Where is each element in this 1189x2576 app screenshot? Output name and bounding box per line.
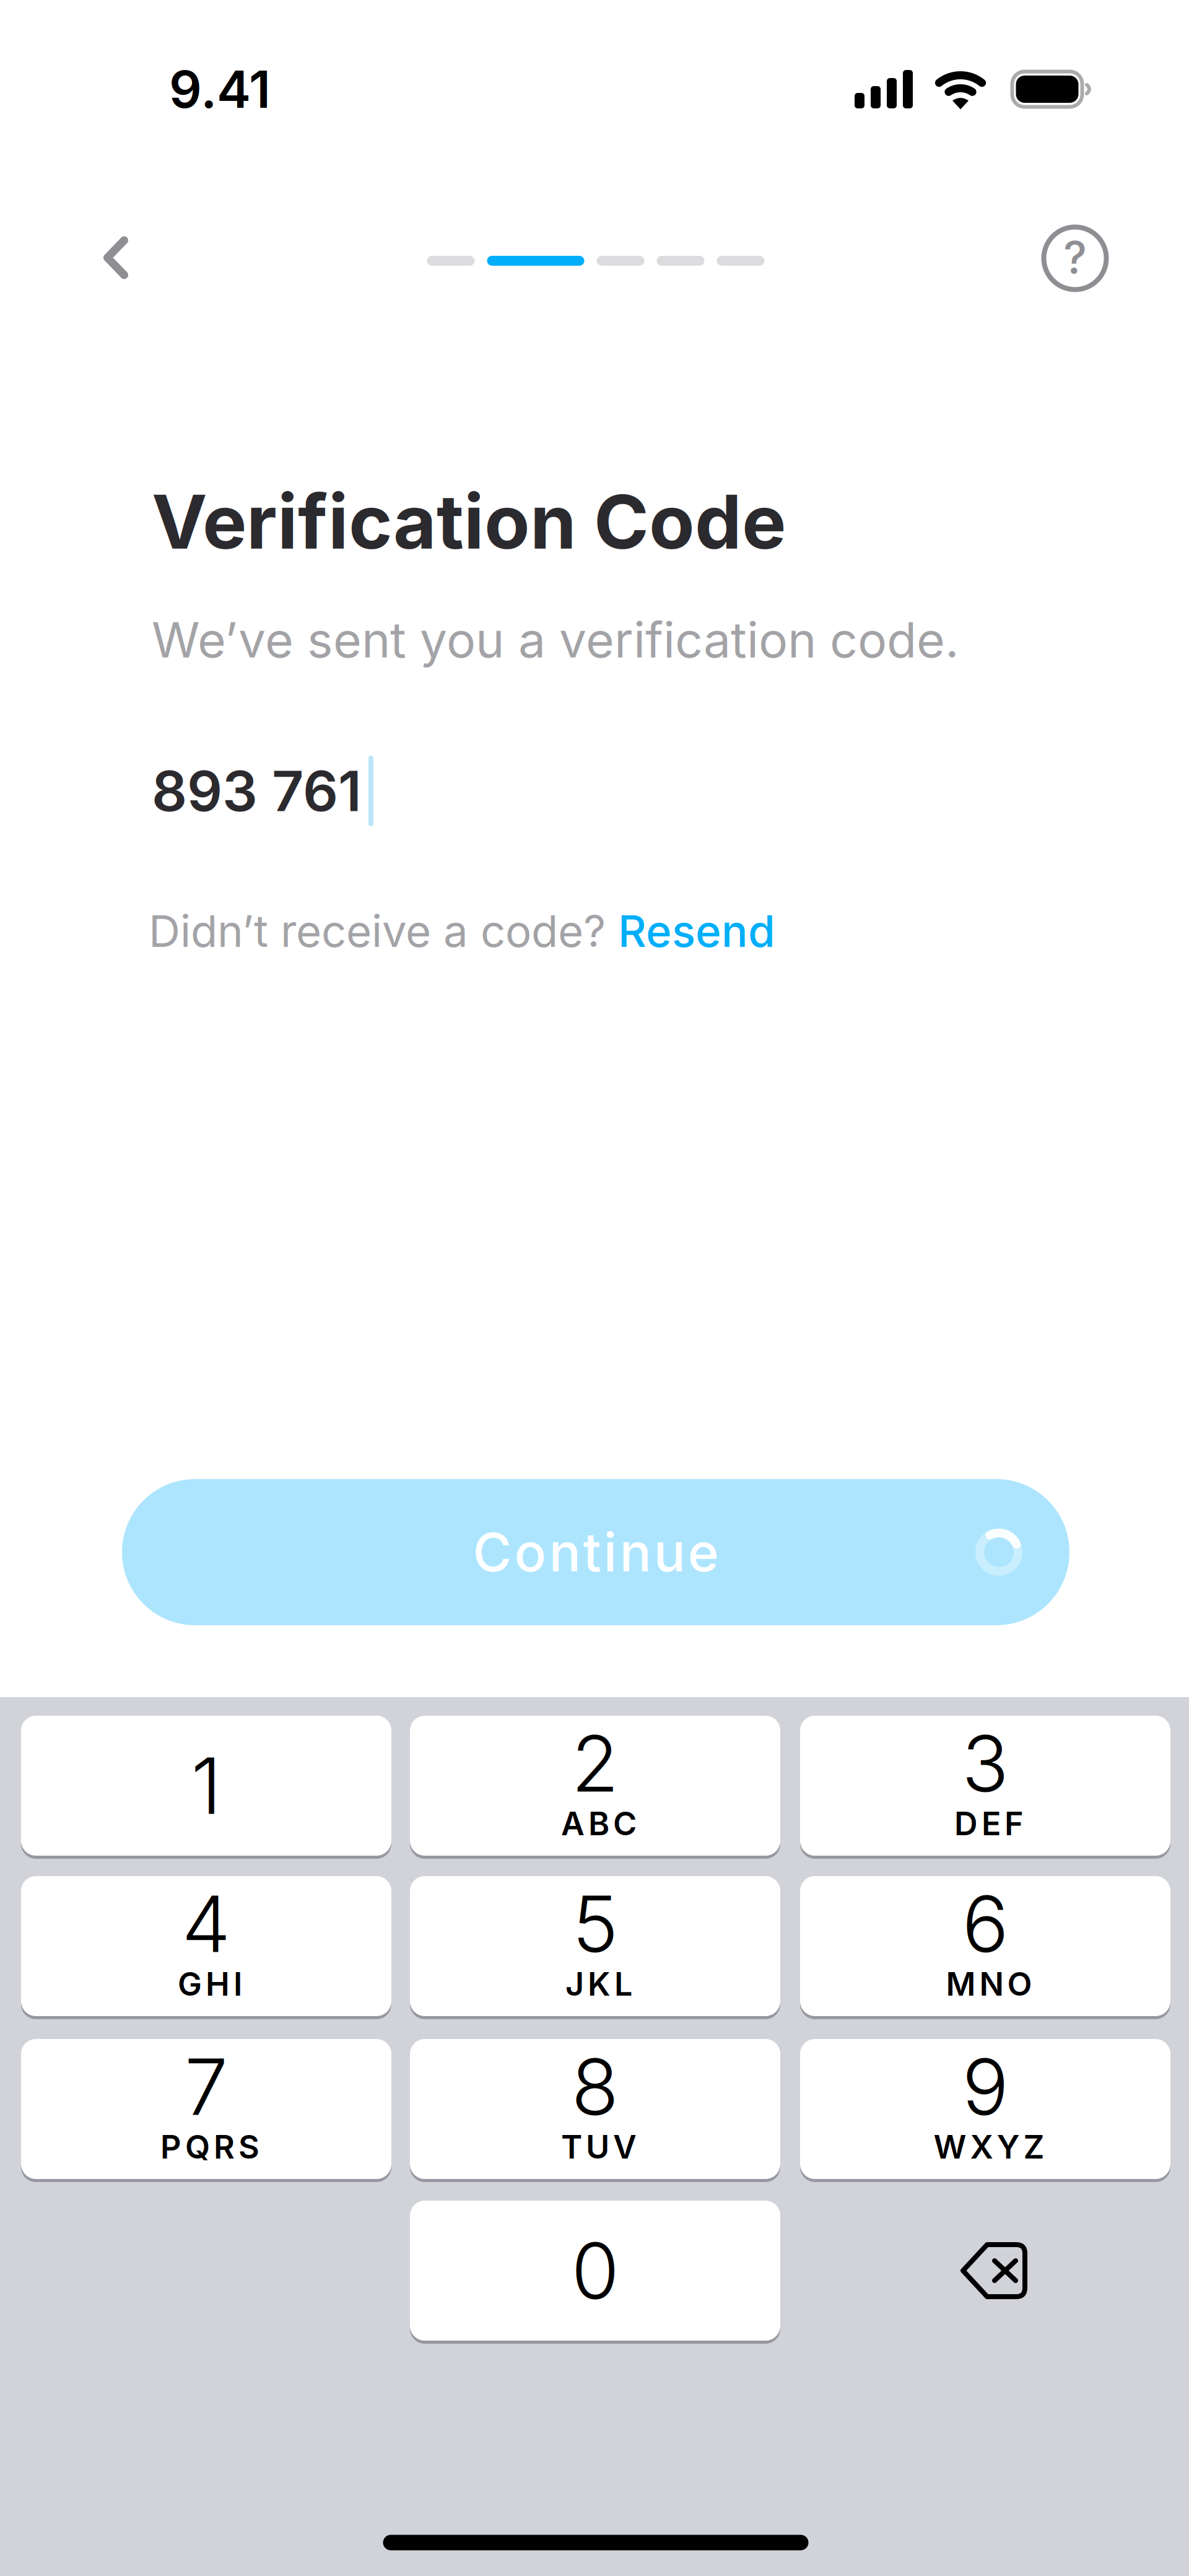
button[interactable]: Back (69, 214, 162, 301)
staticText: 7 (185, 2040, 228, 2134)
staticText: Didn’t receive a code? (149, 904, 618, 957)
staticText: 9 (962, 2040, 1008, 2134)
button[interactable]: 7 (21, 2039, 391, 2179)
button[interactable]: 2 (410, 1716, 780, 1856)
staticText: 1 (191, 1739, 221, 1833)
staticText: PQRS (160, 2127, 259, 2166)
button[interactable]: 5 (410, 1876, 780, 2016)
button[interactable]: 1 (21, 1716, 391, 1856)
staticText: JKL (565, 1964, 632, 2003)
button[interactable]: 9 (800, 2039, 1170, 2179)
staticText: 8 (571, 2040, 619, 2134)
staticText: 893 761 (152, 758, 362, 824)
staticText: 3 (962, 1716, 1009, 1810)
staticText: GHI (178, 1964, 242, 2003)
staticText: ABC (561, 1804, 637, 1843)
staticText: 6 (962, 1877, 1008, 1971)
staticText: Continue (473, 1520, 719, 1584)
button[interactable]: Delete (800, 2201, 1170, 2341)
staticText: 0 (571, 2224, 619, 2318)
staticText: 9.41 (169, 58, 271, 120)
staticText: 5 (572, 1877, 618, 1971)
button[interactable]: 0 (410, 2201, 780, 2341)
button[interactable]: 6 (800, 1876, 1170, 2016)
button[interactable]: 8 (410, 2039, 780, 2179)
staticText: TUV (561, 2127, 637, 2166)
staticText: ? (1063, 230, 1087, 284)
button[interactable]: 3 (800, 1716, 1170, 1856)
staticText: 4 (182, 1877, 231, 1971)
staticText: Verification Code (152, 477, 786, 566)
button[interactable]: Continue (122, 1479, 1069, 1625)
button[interactable]: Didn’t receive a code? (149, 904, 1016, 957)
staticText: We’ve sent you a verification code. (152, 610, 959, 669)
staticText: DEF (954, 1804, 1024, 1843)
staticText: WXYZ (934, 2127, 1044, 2166)
button[interactable]: 4 (21, 1876, 391, 2016)
button[interactable]: Help (1029, 215, 1121, 302)
staticText: Resend (618, 904, 775, 957)
staticText: MNO (946, 1964, 1032, 2003)
staticText: 2 (571, 1716, 619, 1810)
